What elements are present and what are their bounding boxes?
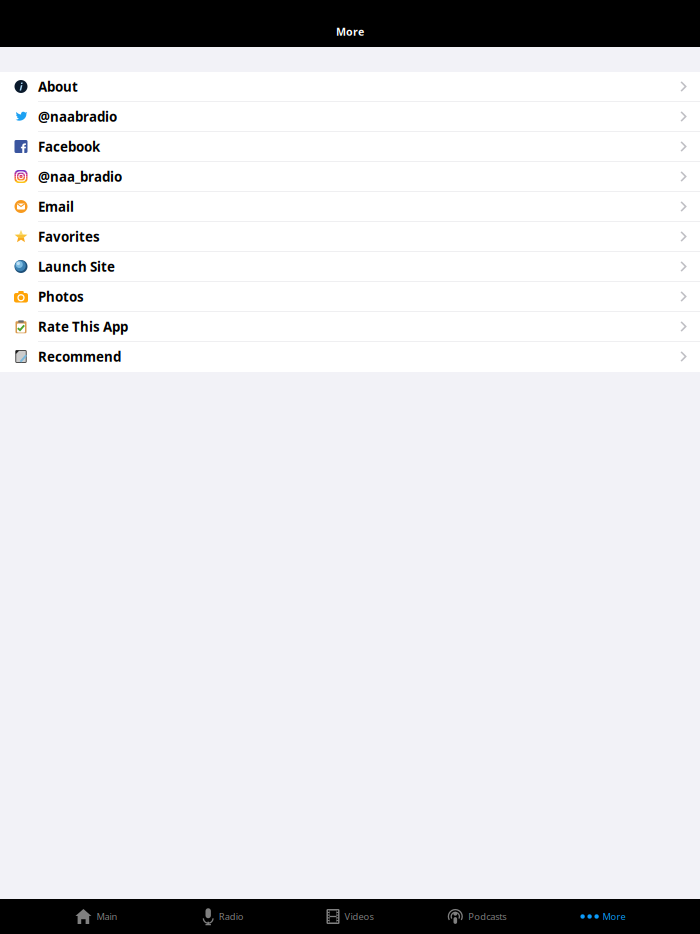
staticText: About bbox=[38, 78, 78, 95]
staticText: More bbox=[336, 24, 364, 39]
button[interactable]: More bbox=[540, 899, 667, 934]
button[interactable]: Launch Site bbox=[0, 252, 700, 282]
staticText: Favorites bbox=[38, 228, 100, 245]
staticText: @naabradio bbox=[38, 108, 117, 125]
staticText: Photos bbox=[38, 288, 84, 305]
button[interactable]: Videos bbox=[287, 899, 413, 934]
button[interactable]: @naa_bradio bbox=[0, 162, 700, 192]
button[interactable]: Recommend bbox=[0, 342, 700, 372]
staticText: @naa_bradio bbox=[38, 168, 122, 185]
button[interactable]: About bbox=[0, 72, 700, 102]
button[interactable]: Facebook bbox=[0, 132, 700, 162]
button[interactable]: Main bbox=[33, 899, 160, 934]
staticText: Email bbox=[38, 198, 74, 215]
button[interactable]: @naabradio bbox=[0, 102, 700, 132]
button[interactable]: Radio bbox=[160, 899, 287, 934]
staticText: Radio bbox=[219, 910, 244, 923]
staticText: Recommend bbox=[38, 348, 121, 365]
staticText: Rate This App bbox=[38, 318, 128, 335]
staticText: Podcasts bbox=[468, 910, 506, 923]
button[interactable]: Email bbox=[0, 192, 700, 222]
button[interactable]: Podcasts bbox=[413, 899, 540, 934]
button[interactable]: Rate This App bbox=[0, 312, 700, 342]
staticText: More bbox=[603, 910, 626, 923]
staticText: Main bbox=[96, 910, 117, 923]
staticText: Videos bbox=[344, 910, 373, 923]
button[interactable]: Photos bbox=[0, 282, 700, 312]
staticText: Facebook bbox=[38, 138, 100, 155]
staticText: Launch Site bbox=[38, 258, 115, 275]
button[interactable]: Favorites bbox=[0, 222, 700, 252]
